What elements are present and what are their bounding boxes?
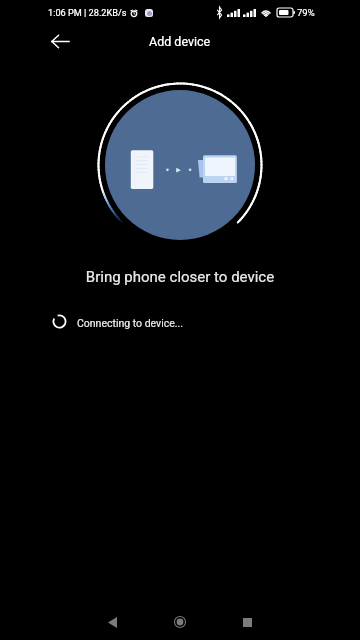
staticText: 79%	[297, 7, 315, 18]
button[interactable]: Recents	[227, 602, 267, 640]
staticText: Add device	[149, 34, 211, 49]
staticText: Bring phone closer to device	[0, 268, 360, 286]
button[interactable]: Home	[160, 602, 200, 640]
staticText: 1:06 PM | 28.2KB/s	[48, 7, 127, 18]
staticText: Connecting to device...	[77, 317, 184, 329]
button[interactable]: Back	[44, 25, 76, 57]
button[interactable]: Back	[92, 602, 132, 640]
